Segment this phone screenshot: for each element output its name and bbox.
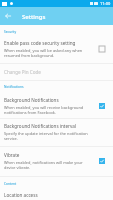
- staticText: Vibrate: [4, 152, 20, 158]
- button[interactable]: Background Notifications: [0, 97, 113, 115]
- staticText: device vibrate.: [4, 165, 31, 170]
- staticText: Change Pin Code: [4, 69, 41, 75]
- staticText: Location access: [4, 192, 38, 198]
- button[interactable]: Change Pin Code: [0, 69, 113, 75]
- staticText: When enabled, notifications will make yo…: [4, 160, 83, 165]
- staticText: Specify the update interval for the noti…: [4, 131, 88, 136]
- button[interactable]: Enable pass code security setting: [0, 40, 113, 58]
- button[interactable]: Background Notifications interval: [0, 123, 113, 141]
- staticText: Background Notifications interval: [4, 123, 77, 129]
- staticText: notifications from Facebook.: [4, 110, 56, 115]
- staticText: Settings: [22, 13, 46, 21]
- staticText: When enabled, you will be asked any when: [4, 48, 83, 53]
- button[interactable]: Location access: [0, 192, 113, 198]
- staticText: service.: [4, 136, 18, 141]
- button[interactable]: Back: [2, 10, 14, 22]
- staticText: Enable pass code security setting: [4, 40, 76, 46]
- staticText: Notifications: [4, 85, 24, 89]
- staticText: Security: [4, 30, 17, 34]
- button[interactable]: Vibrate: [0, 152, 113, 170]
- staticText: Background Notifications: [4, 97, 59, 103]
- staticText: When enabled, you will receive backgroun…: [4, 105, 84, 110]
- staticText: resumed from background.: [4, 53, 55, 58]
- staticText: Content: [4, 182, 17, 186]
- staticText: 11:00: [100, 1, 111, 6]
